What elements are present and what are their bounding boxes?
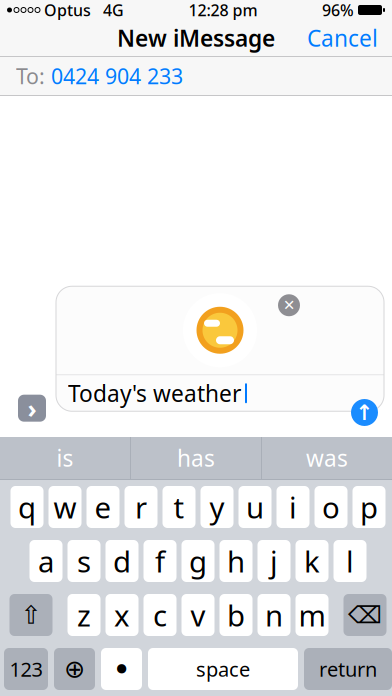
staticText: ⇧ [20,601,41,629]
button[interactable]: d [105,540,138,582]
staticText: 96% [322,0,354,21]
staticText: To: [16,62,45,90]
button[interactable]: g [181,540,214,582]
button[interactable]: t [162,486,195,528]
staticText: m [298,595,325,634]
button[interactable]: c [143,594,176,636]
staticText: i [289,487,297,526]
staticText: u [246,487,264,526]
staticText: was [306,443,348,473]
button[interactable]: Delete [343,594,386,636]
button[interactable]: s [67,540,100,582]
staticText: j [270,541,278,580]
staticText: e [94,487,111,526]
staticText: o [322,487,340,526]
staticText: ↑ [355,400,373,425]
staticText: l [346,541,354,580]
staticText: w [53,487,76,526]
staticText: Today's weather [68,378,241,408]
button[interactable]: has [131,437,261,479]
staticText: ⊕ [64,655,85,683]
staticText: New iMessage [117,23,275,53]
button[interactable]: r [124,486,157,528]
button[interactable]: u [238,486,271,528]
button[interactable]: f [143,540,176,582]
button[interactable]: To: [0,57,392,95]
button[interactable]: z [67,594,100,636]
button[interactable]: v [181,594,214,636]
button[interactable]: More apps [18,391,46,425]
button[interactable]: h [219,540,252,582]
staticText: ⏺ [116,659,126,679]
staticText: p [360,487,378,526]
button[interactable]: Next keyboard [54,648,95,690]
staticText: h [227,541,245,580]
staticText: k [304,541,320,580]
staticText: is [56,443,73,473]
staticText: Cancel [307,23,378,53]
staticText: 12:28 pm [188,0,257,21]
button[interactable]: return [304,648,392,690]
staticText: a [38,541,54,580]
staticText: return [319,656,377,682]
staticText: ⌫ [348,601,382,629]
button[interactable]: e [86,486,119,528]
button[interactable]: was [262,437,392,479]
staticText: › [27,391,36,425]
button[interactable]: n [257,594,290,636]
staticText: x [114,595,130,634]
staticText: 0424 904 233 [51,62,183,90]
button[interactable]: Shift [9,594,52,636]
staticText: d [113,541,131,580]
button[interactable]: Cancel [293,15,392,61]
staticText: s [77,541,91,580]
button[interactable]: Numbers [4,648,48,690]
button[interactable]: w [48,486,81,528]
staticText: ✕ [283,297,295,313]
button[interactable]: a [29,540,62,582]
button[interactable]: p [352,486,385,528]
staticText: b [227,595,245,634]
staticText: has [177,443,215,473]
staticText: Optus 4G [40,0,124,21]
button[interactable]: x [105,594,138,636]
button[interactable]: space [148,648,298,690]
button[interactable]: b [219,594,252,636]
staticText: t [173,487,184,526]
button[interactable]: j [257,540,290,582]
staticText: y [209,487,224,526]
staticText: f [155,541,165,580]
staticText: 123 [9,656,42,682]
staticText: space [196,656,250,682]
button[interactable]: is [0,437,130,479]
staticText: v [190,595,205,634]
button[interactable]: k [295,540,328,582]
staticText: c [153,595,167,634]
staticText: n [265,595,283,634]
staticText: z [77,595,91,634]
staticText: r [135,487,147,526]
staticText: g [189,541,207,580]
button[interactable]: Dictation [101,648,142,690]
button[interactable]: y [200,486,233,528]
button[interactable]: Send [351,399,378,426]
button[interactable]: m [295,594,328,636]
button[interactable]: Remove attachment [278,294,300,316]
button[interactable]: i [276,486,309,528]
button[interactable]: o [314,486,347,528]
staticText: q [18,487,36,526]
button[interactable]: l [333,540,366,582]
button[interactable]: q [10,486,43,528]
